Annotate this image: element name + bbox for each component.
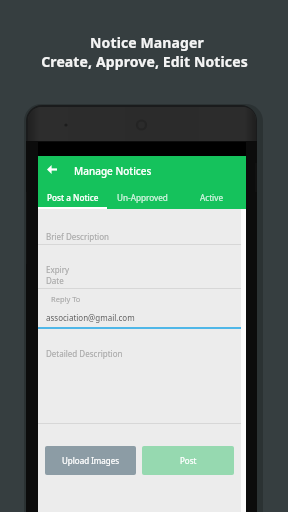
- staticText: Detailed Description: [46, 348, 123, 359]
- staticText: Post a Notice: [47, 192, 99, 203]
- button[interactable]: Back: [38, 155, 65, 184]
- staticText: Manage Notices: [74, 164, 152, 178]
- staticText: Upload Images: [62, 455, 120, 466]
- staticText: Un-Approved: [117, 192, 168, 203]
- button[interactable]: Active: [177, 185, 246, 209]
- staticText: Reply To: [51, 294, 81, 304]
- staticText: Active: [200, 192, 224, 203]
- staticText: Post: [180, 455, 197, 466]
- staticText: association@gmail.com: [46, 312, 135, 323]
- staticText: Create, Approve, Edit Notices: [41, 52, 248, 71]
- staticText: Notice Manager: [90, 33, 204, 52]
- button[interactable]: Post: [142, 446, 234, 475]
- staticText: Brief Description: [46, 231, 109, 242]
- button[interactable]: Post a Notice: [38, 185, 108, 209]
- button[interactable]: Un-Approved: [108, 185, 177, 209]
- staticText: Expiry Date: [46, 264, 70, 286]
- button[interactable]: Upload Images: [45, 446, 136, 475]
